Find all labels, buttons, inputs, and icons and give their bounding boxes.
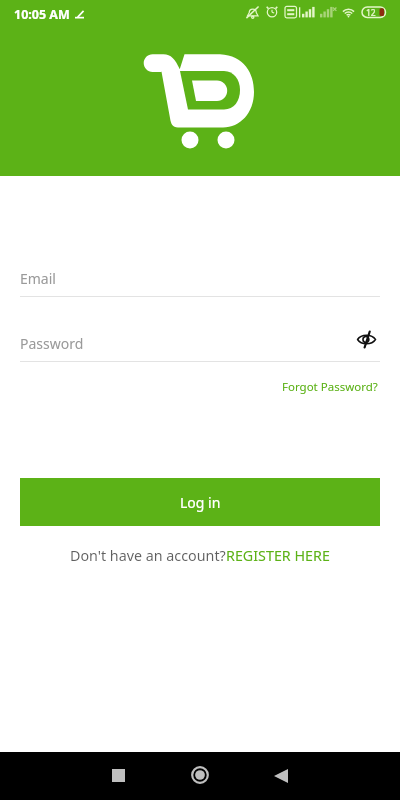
button[interactable]: Email <box>20 269 380 297</box>
button[interactable]: Show password <box>352 325 380 353</box>
button[interactable]: Home <box>177 752 222 797</box>
button[interactable]: Recents <box>96 753 141 798</box>
staticText: REGISTER HERE <box>226 546 330 565</box>
staticText: Password <box>20 334 84 353</box>
staticText: Log in <box>180 493 221 512</box>
staticText: 12 <box>366 7 376 19</box>
button[interactable]: REGISTER HERE <box>226 546 330 565</box>
button[interactable]: Log in <box>20 478 380 526</box>
staticText: Don't have an account? <box>70 546 226 565</box>
button[interactable]: Back <box>258 753 303 798</box>
button[interactable]: Forgot Password? <box>280 375 380 399</box>
staticText: 10:05 AM <box>14 6 70 23</box>
staticText: Forgot Password? <box>282 379 378 395</box>
button[interactable]: Password <box>20 334 380 353</box>
staticText: Email <box>20 269 56 288</box>
